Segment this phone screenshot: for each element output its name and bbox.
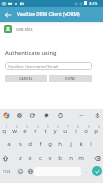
button[interactable]: X xyxy=(0,23,103,35)
button[interactable]: GIF xyxy=(28,111,37,120)
button[interactable]: Backspace xyxy=(92,152,102,164)
staticText: u xyxy=(63,127,67,135)
button[interactable]: e xyxy=(20,124,30,137)
button[interactable]: r xyxy=(30,124,40,137)
button[interactable]: v xyxy=(45,151,55,164)
staticText: ?123 xyxy=(3,169,11,174)
staticText: 7 xyxy=(67,125,69,129)
staticText: c xyxy=(39,154,42,162)
button[interactable]: h xyxy=(55,137,65,150)
staticText: l xyxy=(90,140,92,148)
staticText: d xyxy=(28,140,32,148)
button[interactable]: ?123 xyxy=(1,165,13,177)
staticText: r xyxy=(34,127,37,135)
button[interactable]: i xyxy=(71,124,81,137)
staticText: 0 xyxy=(98,125,100,129)
staticText: g xyxy=(48,140,52,148)
staticText: t xyxy=(44,127,47,135)
button[interactable]: Back xyxy=(2,9,13,20)
button[interactable]: o xyxy=(81,124,91,137)
staticText: 9 xyxy=(88,125,90,129)
button[interactable]: j xyxy=(66,137,76,150)
button[interactable]: n xyxy=(66,151,76,164)
staticText: 8 xyxy=(77,125,79,129)
staticText: x xyxy=(28,154,32,162)
staticText: DONE xyxy=(65,76,76,81)
staticText: k xyxy=(79,140,83,148)
button[interactable]: t xyxy=(40,124,50,137)
button[interactable]: DONE xyxy=(49,75,92,82)
staticText: 4 xyxy=(37,125,39,129)
button[interactable]: a xyxy=(4,137,14,150)
button[interactable]: g xyxy=(45,137,55,150)
button[interactable]: x xyxy=(25,151,35,164)
staticText: a xyxy=(7,140,11,148)
staticText: 5 xyxy=(47,125,49,129)
staticText: cee.xlsx xyxy=(16,26,33,32)
button[interactable]: y xyxy=(50,124,60,137)
staticText: j xyxy=(70,140,72,148)
button[interactable]: l xyxy=(86,137,96,150)
staticText: 1 xyxy=(6,125,8,129)
staticText: 3:15 xyxy=(89,1,98,7)
staticText: . xyxy=(86,168,88,175)
button[interactable]: f xyxy=(35,137,45,150)
staticText: Authenticate using xyxy=(5,49,57,57)
button[interactable]: q xyxy=(0,124,9,137)
button[interactable]: s xyxy=(15,137,25,150)
button[interactable]: Enter xyxy=(92,166,102,176)
button[interactable]: b xyxy=(55,151,65,164)
button[interactable]: c xyxy=(35,151,45,164)
staticText: CANCEL xyxy=(19,76,33,81)
button[interactable]: Settings xyxy=(15,111,24,120)
staticText: w xyxy=(12,127,17,135)
staticText: 3 xyxy=(26,125,28,129)
button[interactable]: p xyxy=(91,124,101,137)
staticText: n xyxy=(69,154,73,162)
button[interactable]: Stickers xyxy=(42,111,51,120)
button[interactable]: w xyxy=(9,124,19,137)
staticText: b xyxy=(58,154,62,162)
staticText: Vaultize DRM Client (vDRM) xyxy=(17,11,80,18)
staticText: i xyxy=(75,127,77,135)
button[interactable]: k xyxy=(76,137,86,150)
button[interactable]: Emoji xyxy=(15,165,25,177)
button[interactable]: z xyxy=(15,151,25,164)
button[interactable]: Shift xyxy=(0,152,10,164)
staticText: h xyxy=(58,140,62,148)
staticText: 6 xyxy=(57,125,59,129)
staticText: 2 xyxy=(16,125,18,129)
button[interactable]: . xyxy=(83,165,91,177)
button[interactable]: Voice input xyxy=(93,111,102,120)
button[interactable]: u xyxy=(60,124,70,137)
button[interactable]: m xyxy=(76,151,86,164)
staticText: e xyxy=(23,127,27,135)
button[interactable]: Google search xyxy=(2,111,11,120)
staticText: s xyxy=(19,140,22,148)
staticText: z xyxy=(19,154,22,162)
staticText: Vaultize Username/Email xyxy=(8,63,59,69)
button[interactable]: More options xyxy=(77,111,86,120)
staticText: f xyxy=(39,140,42,148)
staticText: q xyxy=(2,127,6,135)
staticText: o xyxy=(84,127,88,135)
button[interactable]: d xyxy=(25,137,35,150)
staticText: m xyxy=(78,154,84,162)
staticText: p xyxy=(94,127,98,135)
staticText: v xyxy=(48,154,52,162)
button[interactable]: Vaultize Username/Email xyxy=(5,62,92,70)
staticText: X xyxy=(6,25,11,33)
button[interactable]: Change language xyxy=(25,165,35,177)
staticText: y xyxy=(53,127,57,135)
button[interactable]: Clipboard xyxy=(56,111,65,120)
button[interactable]: CANCEL xyxy=(5,75,47,82)
